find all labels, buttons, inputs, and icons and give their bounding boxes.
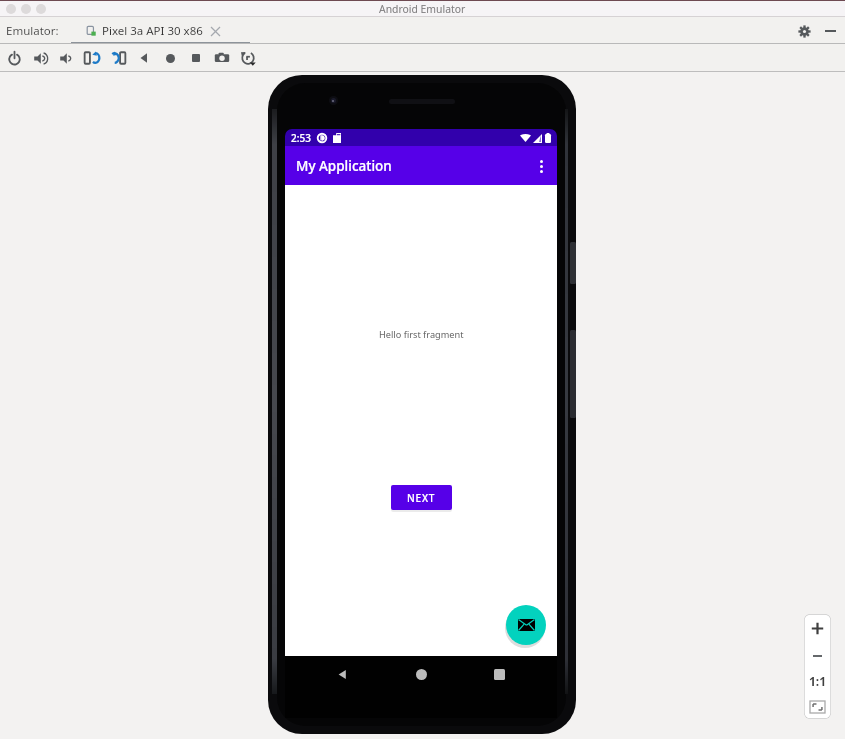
button[interactable]: Recents: [482, 657, 516, 691]
button[interactable]: Volume up: [27, 45, 53, 71]
button[interactable]: Record: [235, 45, 261, 71]
button[interactable]: Home: [157, 45, 183, 71]
button[interactable]: Back: [325, 657, 359, 691]
button[interactable]: More options: [526, 151, 556, 181]
button[interactable]: Window button: [36, 4, 46, 14]
staticText: NEXT: [407, 491, 436, 505]
button[interactable]: Fit to window: [804, 694, 831, 719]
button[interactable]: Rotate left: [79, 45, 105, 71]
button[interactable]: Screenshot: [209, 45, 235, 71]
staticText: Emulator:: [6, 23, 59, 39]
staticText: Hello first fragment: [379, 328, 464, 341]
button[interactable]: Power: [1, 45, 27, 71]
button[interactable]: Pixel 3a API 30 x86: [86, 17, 221, 44]
button[interactable]: Home: [404, 657, 438, 691]
button[interactable]: Window button: [21, 4, 31, 14]
button[interactable]: NEXT: [391, 485, 452, 510]
button[interactable]: Actual size: [804, 668, 831, 694]
button[interactable]: Rotate right: [105, 45, 131, 71]
button[interactable]: Back: [131, 45, 157, 71]
button[interactable]: Close tab: [209, 25, 221, 37]
button[interactable]: Settings: [793, 20, 815, 42]
staticText: My Application: [296, 157, 392, 175]
button[interactable]: Window button: [6, 4, 16, 14]
button[interactable]: Compose email: [506, 605, 546, 645]
button[interactable]: Zoom out: [804, 643, 831, 668]
staticText: 2:53: [291, 131, 311, 145]
staticText: 1:1: [809, 673, 827, 689]
button[interactable]: Volume down: [53, 45, 79, 71]
button[interactable]: Overview: [183, 45, 209, 71]
staticText: Android Emulator: [379, 2, 466, 16]
button[interactable]: Minimize: [819, 20, 841, 42]
button[interactable]: Zoom in: [804, 614, 831, 643]
staticText: Pixel 3a API 30 x86: [102, 23, 203, 39]
